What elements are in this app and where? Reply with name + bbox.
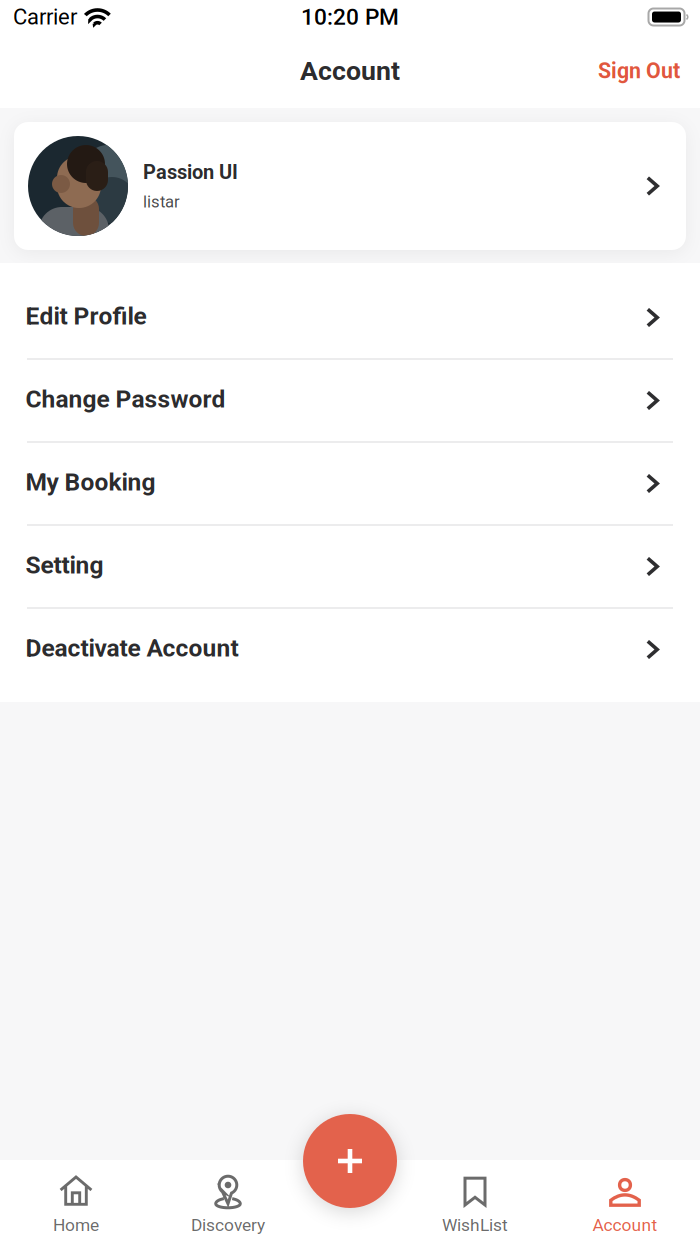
- button[interactable]: Setting: [0, 525, 700, 607]
- staticText: listar: [143, 192, 180, 211]
- staticText: 10:20 PM: [301, 4, 399, 30]
- staticText: Setting: [25, 551, 103, 579]
- staticText: Sign Out: [598, 58, 680, 83]
- button[interactable]: Home: [0, 1160, 152, 1244]
- button[interactable]: Discovery: [152, 1160, 304, 1244]
- button[interactable]: Sign Out: [578, 41, 700, 101]
- staticText: My Booking: [25, 468, 155, 496]
- staticText: Discovery: [191, 1215, 265, 1235]
- button[interactable]: WishList: [400, 1160, 550, 1244]
- staticText: Carrier: [13, 4, 77, 30]
- staticText: Account: [592, 1215, 657, 1235]
- button[interactable]: Account: [550, 1160, 700, 1244]
- staticText: Home: [53, 1215, 99, 1235]
- staticText: Deactivate Account: [25, 634, 238, 662]
- staticText: Passion UI: [143, 160, 238, 184]
- button[interactable]: Deactivate Account: [0, 608, 700, 690]
- staticText: Account: [300, 55, 400, 87]
- button[interactable]: Passion UI: [14, 122, 686, 250]
- button[interactable]: Add: [303, 1114, 397, 1208]
- staticText: WishList: [442, 1215, 508, 1235]
- button[interactable]: My Booking: [0, 442, 700, 524]
- staticText: Edit Profile: [25, 302, 146, 330]
- button[interactable]: Change Password: [0, 359, 700, 441]
- button[interactable]: Edit Profile: [0, 276, 700, 358]
- staticText: Change Password: [25, 385, 225, 413]
